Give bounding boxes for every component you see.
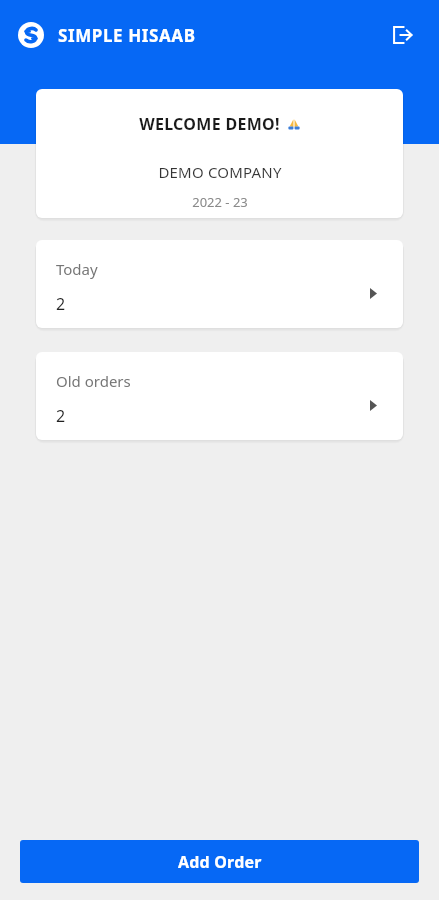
button[interactable]: Log out [383, 16, 421, 54]
staticText: DEMO COMPANY [158, 162, 282, 182]
button[interactable]: Today [36, 240, 403, 328]
button[interactable]: Old orders [36, 352, 403, 440]
staticText: 2 [56, 405, 66, 427]
button[interactable]: Add Order [20, 840, 419, 883]
staticText: SIMPLE HISAAB [58, 24, 196, 47]
staticText: 2 [56, 293, 66, 315]
staticText: Old orders [56, 371, 131, 391]
staticText: WELCOME DEMO! [139, 113, 280, 135]
staticText: 2022 - 23 [192, 193, 248, 211]
staticText: Add Order [178, 851, 262, 873]
staticText: Today [56, 259, 98, 279]
